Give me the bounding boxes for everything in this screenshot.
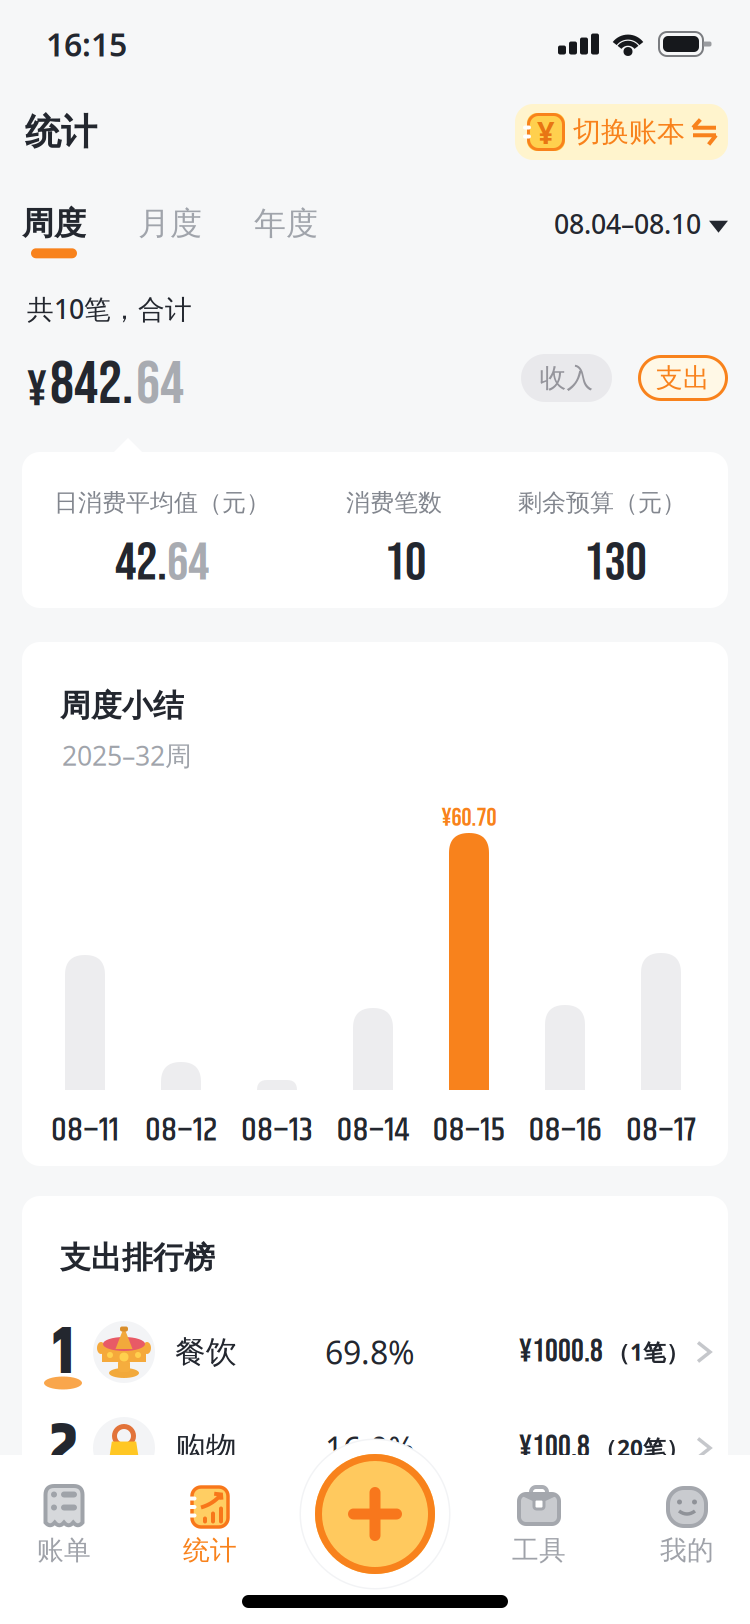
button[interactable]: 收入	[521, 354, 612, 402]
staticText: ¥1000.8	[519, 1333, 603, 1371]
staticText: 64	[136, 349, 184, 421]
staticText: 年度	[254, 204, 318, 243]
staticText: 08–17	[626, 1104, 696, 1157]
button[interactable]: 2	[0, 1409, 750, 1487]
staticText: 08–14	[336, 1104, 409, 1157]
staticText: 16.0%	[325, 1427, 415, 1469]
button[interactable]: 周度	[22, 204, 86, 258]
staticText: 64	[167, 531, 209, 595]
staticText: 08–16	[528, 1104, 601, 1157]
staticText: 周度	[22, 204, 86, 243]
button[interactable]: 月度	[86, 204, 202, 243]
staticText: ¥	[27, 361, 47, 420]
staticText: 支出	[656, 362, 710, 394]
staticText: 统计	[183, 1534, 237, 1567]
staticText: ¥60.70	[441, 803, 496, 833]
staticText: 10	[384, 531, 426, 595]
staticText: 消费笔数	[346, 488, 442, 517]
staticText: 08–12	[145, 1104, 217, 1157]
button[interactable]: 统计	[146, 1484, 274, 1567]
staticText: 餐饮	[175, 1333, 237, 1371]
staticText: 我的	[660, 1534, 714, 1567]
staticText: 收入	[539, 362, 593, 394]
staticText: 1	[52, 1303, 73, 1405]
staticText: 08–15	[432, 1104, 505, 1157]
button[interactable]: 记一笔	[315, 1454, 435, 1574]
button[interactable]: 账单	[0, 1484, 128, 1567]
staticText: 08.04–08.10	[554, 206, 701, 241]
staticText: 2025–32周	[62, 738, 192, 773]
staticText: ¥	[537, 112, 555, 152]
staticText: 支出排行榜	[60, 1239, 215, 1277]
staticText: 42.	[115, 531, 167, 595]
button[interactable]: 支出	[638, 355, 728, 401]
staticText: 统计	[25, 110, 97, 154]
staticText: 剩余预算（元）	[518, 488, 686, 517]
staticText: 842.	[50, 349, 133, 421]
staticText: 购物	[175, 1429, 237, 1467]
staticText: 08–13	[241, 1104, 313, 1157]
staticText: 16:15	[46, 23, 127, 65]
staticText: 共10笔，合计	[27, 291, 192, 326]
staticText: 切换账本	[573, 115, 685, 149]
button[interactable]: 08.04–08.10	[554, 204, 728, 241]
staticText: 周度小结	[60, 687, 184, 725]
staticText: 账单	[37, 1534, 91, 1567]
button[interactable]: 1	[0, 1313, 750, 1391]
staticText: 日消费平均值（元）	[54, 488, 270, 517]
staticText: ¥100.8	[519, 1429, 590, 1467]
staticText: 08–11	[51, 1104, 119, 1157]
staticText: 2	[48, 1399, 77, 1501]
staticText: （1笔）	[607, 1337, 689, 1367]
staticText: 130	[583, 531, 646, 595]
button[interactable]: 年度	[202, 204, 318, 243]
staticText: 工具	[512, 1534, 566, 1567]
staticText: （20笔）	[594, 1433, 689, 1463]
button[interactable]: 工具	[475, 1484, 603, 1567]
button[interactable]: ¥	[515, 104, 728, 160]
staticText: 69.8%	[325, 1331, 415, 1373]
staticText: 月度	[138, 204, 202, 243]
button[interactable]: 我的	[623, 1484, 750, 1567]
